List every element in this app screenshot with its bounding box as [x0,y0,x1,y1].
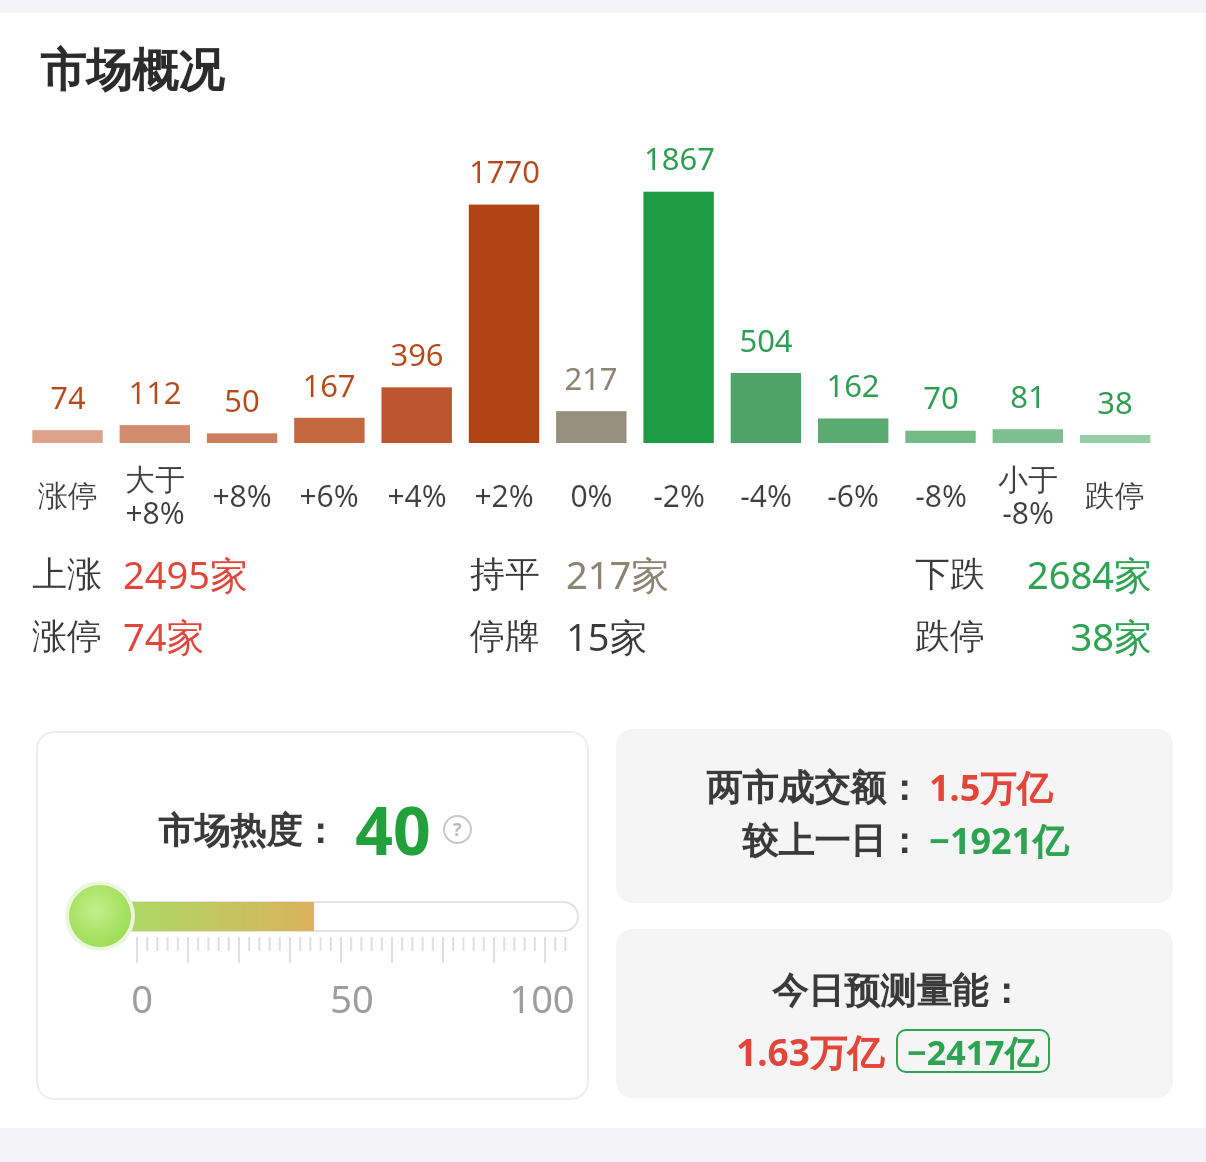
staticText: 50 [224,379,260,421]
staticText: +2% [474,475,534,516]
staticText: +4% [387,475,447,516]
staticText: 38家 [1070,610,1152,662]
staticText: 396 [390,333,444,375]
staticText: 1867 [644,137,715,179]
staticText: 100 [509,972,575,1024]
staticText: 下跌 [915,552,985,596]
staticText: −1921亿 [929,816,1069,865]
staticText: 50 [330,972,374,1024]
staticText: 74家 [123,610,205,662]
staticText: 1.63万亿 [736,1026,884,1077]
staticText: 81 [1010,375,1046,417]
staticText: 今日预测量能： [772,968,1024,1013]
staticText: 217 [564,357,618,399]
staticText: 162 [826,364,880,406]
staticText: 涨停 [38,477,98,515]
staticText: -8% [915,475,967,516]
staticText: 小于 -8% [998,461,1058,533]
staticText: 2495家 [123,548,248,600]
staticText: 涨停 [32,614,102,658]
staticText: 167 [302,364,356,406]
staticText: 38 [1097,381,1133,423]
staticText: 上涨 [32,552,102,596]
staticText: 两市成交额： [706,765,922,810]
staticText: 112 [128,371,182,413]
staticText: 较上一日： [742,818,922,863]
button[interactable]: ? [443,815,472,844]
staticText: 跌停 [1085,477,1145,515]
staticText: 504 [739,319,793,361]
staticText: +8% [212,475,272,516]
staticText: 持平 [470,552,540,596]
staticText: 74 [50,376,86,418]
staticText: 停牌 [470,614,540,658]
button[interactable]: −2417亿 [896,1029,1050,1073]
staticText: +6% [299,475,359,516]
staticText: 0 [131,972,153,1024]
staticText: ? [453,817,462,842]
staticText: 1770 [469,150,540,192]
staticText: 0% [570,475,613,516]
button[interactable] [36,731,589,1100]
staticText: 1.5万亿 [929,763,1053,812]
button[interactable] [616,929,1173,1098]
staticText: 217家 [566,548,670,600]
staticText: -2% [653,475,705,516]
staticText: -6% [827,475,879,516]
staticText: 跌停 [915,614,985,658]
staticText: 2684家 [1027,548,1152,600]
staticText: −2417亿 [907,1029,1039,1073]
staticText: 市场热度： [158,808,338,853]
staticText: 15家 [566,610,648,662]
staticText: -4% [740,475,792,516]
staticText: 大于 +8% [125,461,185,533]
staticText: 市场概况 [40,42,224,100]
staticText: 40 [355,784,431,874]
staticText: 70 [923,376,959,418]
button[interactable] [616,729,1173,903]
